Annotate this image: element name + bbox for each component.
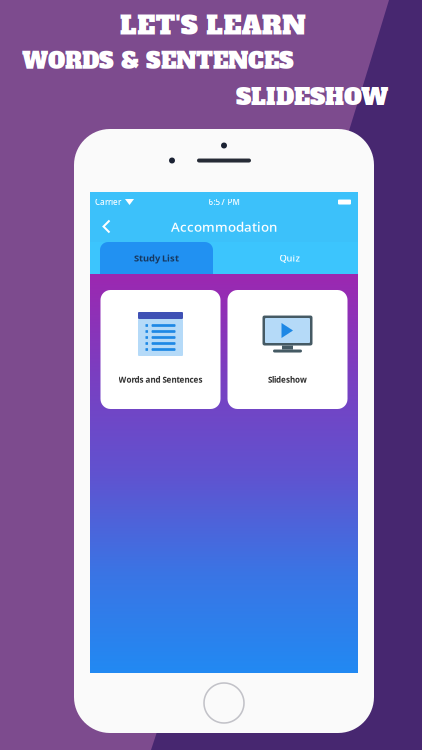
button[interactable]: Back [90,211,121,241]
staticText: SLIDESHOW [236,81,388,112]
staticText: WORDS & SENTENCES [22,46,294,76]
button[interactable]: Slideshow [227,290,347,409]
staticText: Accommodation [171,218,277,235]
staticText: Carrier [95,197,121,207]
button[interactable]: Words and Sentences [100,290,220,409]
staticText: Words and Sentences [118,374,202,385]
staticText: Study List [134,252,179,264]
button[interactable]: Quiz [233,242,346,274]
button[interactable]: Study List [100,242,213,274]
staticText: 6:57 PM [208,197,239,207]
staticText: LET'S LEARN [120,8,306,43]
staticText: Slideshow [268,374,307,385]
staticText: Quiz [279,252,299,264]
